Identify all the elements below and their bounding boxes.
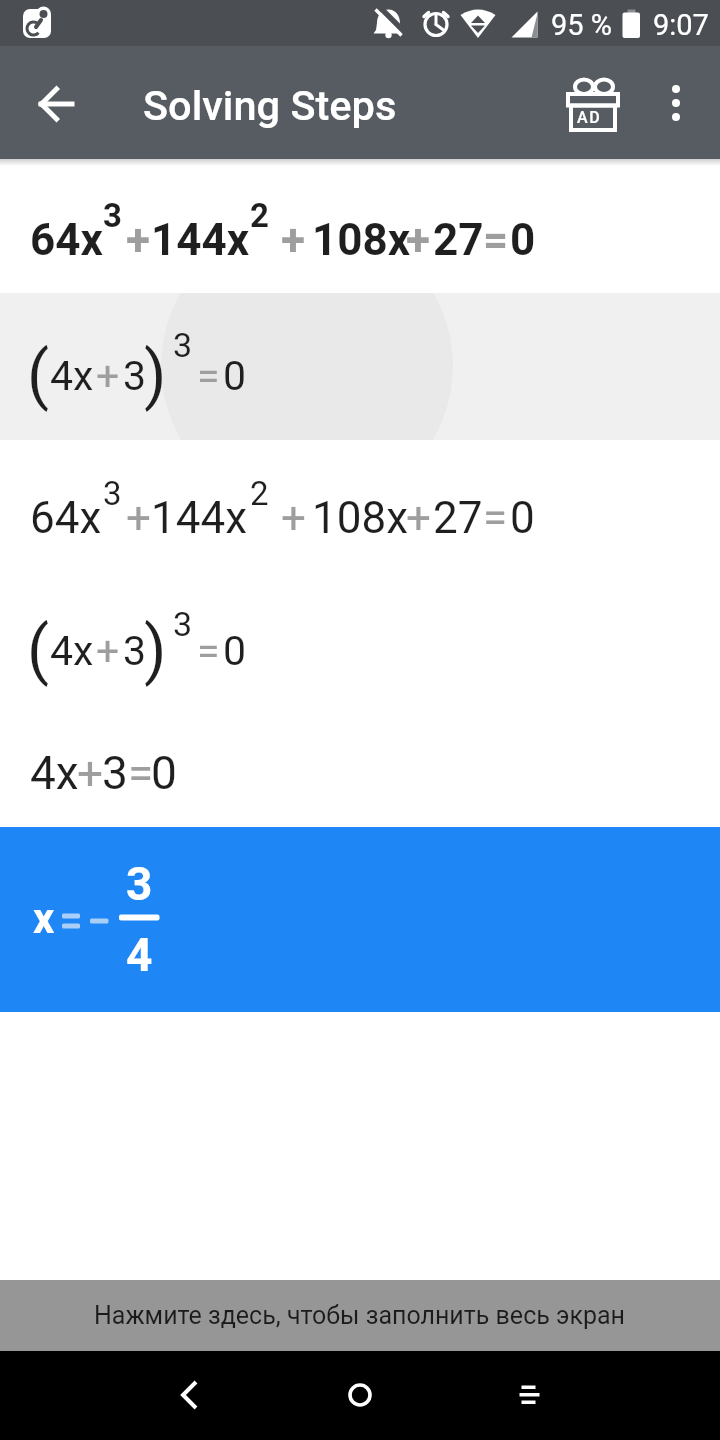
button[interactable]: AD bbox=[556, 70, 626, 140]
staticText: 0 bbox=[510, 214, 536, 266]
staticText: 0 bbox=[223, 627, 247, 675]
staticText: 3 bbox=[126, 857, 153, 911]
staticText: + bbox=[126, 214, 151, 266]
staticText: 3 bbox=[173, 325, 193, 365]
staticText: = bbox=[128, 746, 154, 800]
staticText: 4x bbox=[30, 746, 79, 800]
staticText: 2 bbox=[250, 196, 269, 235]
staticText: x bbox=[33, 894, 55, 943]
staticText: + bbox=[96, 352, 120, 400]
staticText: 0 bbox=[223, 352, 247, 400]
staticText: 9:07 bbox=[653, 8, 709, 42]
button[interactable]: Нажмите здесь, чтобы заполнить весь экра… bbox=[0, 1280, 720, 1351]
staticText: Solving Steps bbox=[143, 81, 397, 130]
button[interactable]: x bbox=[0, 827, 720, 1012]
staticText: + bbox=[406, 214, 431, 266]
staticText: 144x bbox=[151, 492, 248, 544]
staticText: + bbox=[96, 627, 120, 675]
staticText: 3 bbox=[123, 352, 147, 400]
staticText: 3 bbox=[102, 746, 128, 800]
button[interactable] bbox=[493, 1359, 565, 1431]
staticText: 3 bbox=[123, 627, 147, 675]
button[interactable] bbox=[655, 72, 699, 138]
staticText: Нажмите здесь, чтобы заполнить весь экра… bbox=[94, 1301, 626, 1330]
staticText: 4 bbox=[126, 928, 153, 982]
staticText: 4x bbox=[50, 352, 94, 400]
staticText: ) bbox=[144, 337, 167, 413]
staticText: 95 % bbox=[551, 8, 613, 42]
staticText: ( bbox=[27, 612, 50, 688]
staticText: 64x bbox=[30, 214, 103, 266]
staticText: 108x bbox=[312, 214, 411, 266]
staticText: + bbox=[126, 492, 151, 544]
staticText: 3 bbox=[173, 604, 193, 644]
staticText: 3 bbox=[103, 474, 122, 513]
staticText: 2 bbox=[250, 474, 269, 513]
staticText: = bbox=[197, 627, 220, 675]
staticText: AD bbox=[577, 108, 602, 127]
staticText: 108x bbox=[312, 492, 409, 544]
staticText: 4x bbox=[50, 627, 94, 675]
staticText: + bbox=[77, 746, 104, 800]
staticText: + bbox=[281, 492, 306, 544]
button[interactable] bbox=[153, 1359, 225, 1431]
button[interactable] bbox=[20, 68, 92, 140]
staticText: + bbox=[406, 492, 431, 544]
staticText: 27 bbox=[433, 214, 484, 266]
staticText: 3 bbox=[103, 196, 122, 235]
staticText: 64x bbox=[30, 492, 102, 544]
staticText: ) bbox=[144, 612, 167, 688]
staticText: = bbox=[483, 492, 508, 544]
staticText: ( bbox=[27, 337, 50, 413]
staticText: + bbox=[281, 214, 306, 266]
staticText: = bbox=[483, 214, 509, 266]
staticText: 0 bbox=[510, 492, 535, 544]
button[interactable] bbox=[324, 1359, 396, 1431]
staticText: = bbox=[197, 352, 220, 400]
staticText: 144x bbox=[151, 214, 250, 266]
staticText: 27 bbox=[433, 492, 483, 544]
staticText: 0 bbox=[151, 746, 177, 800]
